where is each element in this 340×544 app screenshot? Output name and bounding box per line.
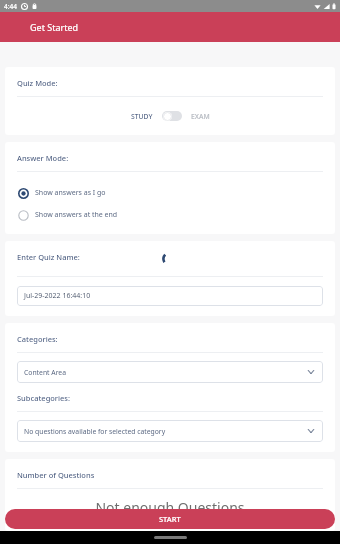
staticText: Jul-29-2022 16:44:10: [24, 291, 91, 301]
staticText: Enter Quiz Name:: [17, 252, 80, 262]
staticText: Content Area: [24, 368, 306, 377]
button[interactable]: Show answers at the end: [18, 205, 323, 225]
button[interactable]: Show answers as I go: [18, 183, 323, 203]
staticText: Subcategories:: [17, 393, 71, 403]
button[interactable]: Select subcategory: [17, 420, 323, 442]
button[interactable]: Jul-29-2022 16:44:10: [17, 286, 323, 306]
button[interactable]: START: [5, 509, 335, 529]
staticText: STUDY: [131, 112, 153, 121]
staticText: No questions available for selected cate…: [24, 427, 306, 436]
staticText: Number of Questions: [17, 470, 95, 480]
staticText: Show answers as I go: [35, 188, 106, 198]
staticText: Quiz Mode:: [17, 78, 58, 88]
button[interactable]: Toggle quiz mode: [162, 111, 182, 121]
staticText: Get Started: [30, 21, 79, 33]
staticText: START: [159, 514, 181, 524]
staticText: 4:44: [4, 2, 17, 11]
staticText: Show answers at the end: [35, 210, 118, 220]
staticText: Not enough Questions: [5, 498, 335, 517]
staticText: Answer Mode:: [17, 153, 69, 163]
staticText: Categories:: [17, 334, 58, 344]
button[interactable]: Select content area: [17, 361, 323, 383]
staticText: EXAM: [191, 112, 210, 121]
